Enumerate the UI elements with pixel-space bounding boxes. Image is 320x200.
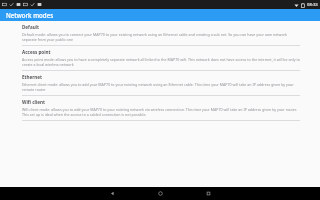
- staticText: Ethernet: [22, 74, 43, 80]
- staticText: Default: [22, 24, 39, 30]
- button[interactable]: Home: [147, 187, 173, 200]
- button[interactable]: Access point: [0, 46, 320, 71]
- button[interactable]: Ethernet: [0, 71, 320, 96]
- button[interactable]: Back: [99, 187, 125, 200]
- staticText: 08:33: [307, 2, 318, 8]
- button[interactable]: Recents: [195, 187, 221, 200]
- button[interactable]: Default: [0, 21, 320, 46]
- staticText: Access point: [22, 49, 51, 55]
- staticText: Ethernet client mode: allows you to add …: [22, 82, 300, 92]
- staticText: Wifi client: [22, 99, 45, 105]
- staticText: Wifi client mode: allows you to add your…: [22, 107, 300, 117]
- staticText: Network modes: [6, 11, 54, 19]
- staticText: Access point mode: allows you to have a …: [22, 57, 300, 67]
- staticText: Default mode: allows you to connect your…: [22, 32, 300, 42]
- button[interactable]: Wifi client: [0, 96, 320, 121]
